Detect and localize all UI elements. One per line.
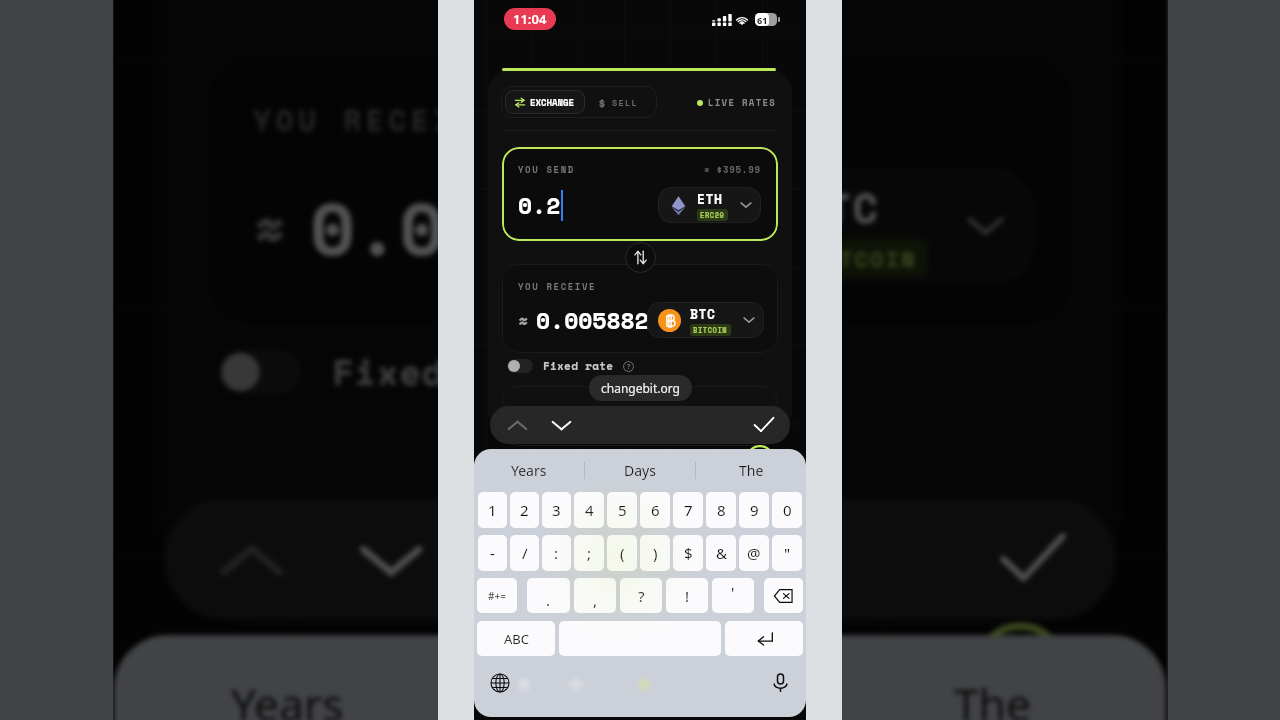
button[interactable]: Swap currencies xyxy=(625,242,656,273)
button[interactable]: Days xyxy=(585,449,695,492)
button[interactable]: Help xyxy=(623,361,634,372)
staticText: ? xyxy=(638,586,645,606)
button[interactable]: Years xyxy=(474,449,584,492)
staticText: 1 xyxy=(488,500,497,520)
staticText: $ xyxy=(684,543,693,563)
button[interactable]: ' xyxy=(712,578,754,613)
button[interactable]: 9 xyxy=(739,492,769,528)
button[interactable]: Dictation xyxy=(767,670,793,696)
button[interactable]: 0 xyxy=(772,492,802,528)
staticText: EXCHANGE xyxy=(530,96,575,109)
staticText: BTC xyxy=(798,175,881,236)
staticText: 11:04 xyxy=(513,10,547,28)
button[interactable]: Next field xyxy=(546,410,576,440)
staticText: ( xyxy=(620,543,625,563)
button[interactable]: BTC xyxy=(647,302,764,338)
button[interactable]: ABC xyxy=(477,621,555,656)
button[interactable]: The xyxy=(696,449,806,492)
button[interactable]: ? xyxy=(620,578,662,613)
button[interactable]: Backspace xyxy=(764,578,803,613)
staticText: 0.2 xyxy=(518,188,561,222)
button[interactable]: ( xyxy=(607,535,637,571)
button[interactable]: : xyxy=(542,535,571,571)
staticText: ≈ xyxy=(518,308,529,333)
staticText: Years xyxy=(511,461,547,480)
button[interactable]: Previous field xyxy=(202,511,298,607)
button[interactable]: Next field xyxy=(342,511,437,607)
button[interactable]: / xyxy=(510,535,539,571)
button[interactable]: @ xyxy=(739,535,769,571)
button[interactable]: Fixed rate toggle xyxy=(218,350,301,394)
button[interactable]: 7 xyxy=(673,492,703,528)
staticText: 61 xyxy=(757,14,768,26)
staticText: Fixed rate xyxy=(543,358,614,374)
staticText: LIVE RATES xyxy=(708,96,777,109)
staticText: BITCOIN xyxy=(693,325,728,335)
button[interactable]: 2 xyxy=(510,492,539,528)
button[interactable]: EXCHANGE xyxy=(505,90,585,114)
staticText: ? xyxy=(627,362,631,372)
button[interactable]: #+= xyxy=(477,578,517,613)
button[interactable]: Return xyxy=(725,621,803,656)
button[interactable]: & xyxy=(706,535,736,571)
staticText: Days xyxy=(624,461,656,480)
staticText: Days xyxy=(589,673,691,720)
button[interactable]: BTC xyxy=(662,169,1033,283)
staticText: , xyxy=(593,590,598,610)
button[interactable]: ) xyxy=(640,535,670,571)
button[interactable]: Done xyxy=(985,511,1081,607)
button[interactable]: 8 xyxy=(706,492,736,528)
button[interactable]: The xyxy=(817,635,1166,720)
button[interactable]: Days xyxy=(466,635,814,720)
button[interactable]: 6 xyxy=(640,492,670,528)
staticText: BTC xyxy=(690,304,716,323)
button[interactable]: Done xyxy=(749,410,779,440)
button[interactable]: YOU RECEIVE xyxy=(202,49,1077,331)
button[interactable]: 3 xyxy=(542,492,571,528)
staticText: changebit.org xyxy=(601,380,680,396)
button[interactable]: $ xyxy=(585,90,653,114)
staticText: YOU RECEIVE xyxy=(253,99,504,141)
staticText: 4 xyxy=(585,500,594,520)
button[interactable]: YOU RECEIVE xyxy=(502,264,778,353)
button[interactable]: Swap currencies xyxy=(592,0,691,77)
staticText: BITCOIN xyxy=(808,242,919,274)
staticText: " xyxy=(784,543,791,563)
button[interactable]: , xyxy=(574,578,616,613)
button[interactable]: ! xyxy=(666,578,708,613)
staticText: - xyxy=(490,543,495,563)
staticText: 3 xyxy=(552,500,561,520)
staticText: YOU SEND xyxy=(518,163,575,176)
button[interactable]: ; xyxy=(574,535,604,571)
staticText: . xyxy=(546,590,551,610)
button[interactable]: $ xyxy=(673,535,703,571)
staticText: ) xyxy=(653,543,658,563)
button[interactable]: 1 xyxy=(478,492,507,528)
staticText: ABC xyxy=(504,630,529,648)
button[interactable]: Years xyxy=(114,635,462,720)
button[interactable]: 5 xyxy=(607,492,637,528)
button[interactable]: Help xyxy=(586,356,621,391)
staticText: The xyxy=(954,673,1033,720)
staticText: 0.0058824 xyxy=(536,303,663,337)
staticText: / xyxy=(522,543,528,563)
button[interactable]: 4 xyxy=(574,492,604,528)
staticText: ! xyxy=(685,586,690,606)
button[interactable]: ETH xyxy=(658,187,761,223)
button[interactable]: Previous field xyxy=(502,410,532,440)
staticText: 0 xyxy=(783,500,792,520)
staticText: Fixed rate xyxy=(332,347,558,397)
staticText: ETH xyxy=(697,189,723,208)
staticText: 9 xyxy=(750,500,759,520)
button[interactable]: . xyxy=(527,578,570,613)
staticText: $ xyxy=(598,93,606,112)
button[interactable]: " xyxy=(772,535,802,571)
staticText: 8 xyxy=(717,500,726,520)
staticText: ? xyxy=(599,359,611,391)
button[interactable]: Switch language xyxy=(487,670,513,696)
button[interactable]: YOU SEND xyxy=(502,147,778,241)
button[interactable]: Fixed rate toggle xyxy=(507,359,533,373)
button[interactable]: - xyxy=(478,535,507,571)
staticText: 6 xyxy=(651,500,660,520)
